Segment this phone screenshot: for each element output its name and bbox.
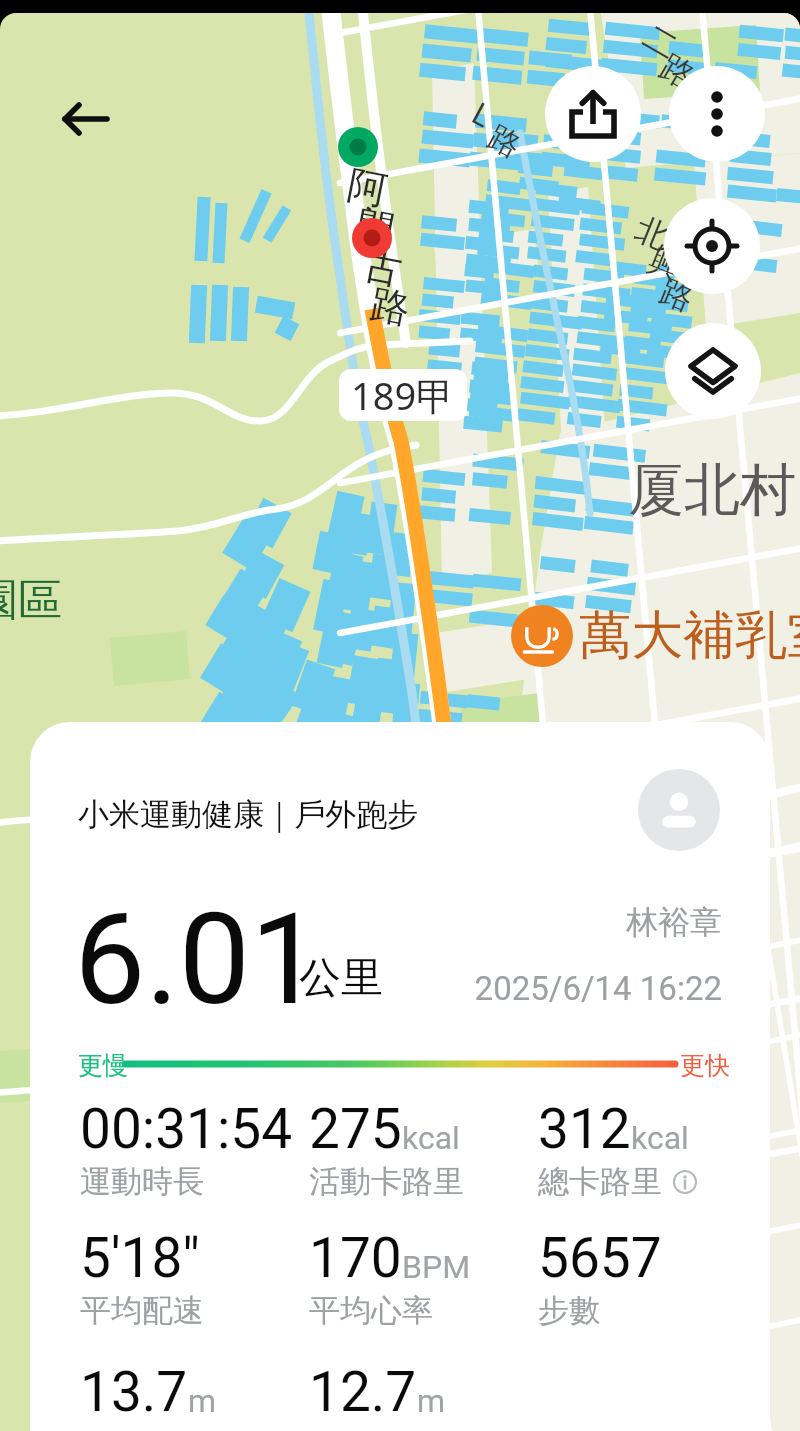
button[interactable]: 13.7 [80, 1360, 217, 1424]
button[interactable]: 5657 [538, 1226, 662, 1330]
staticText: 更快 [680, 1050, 730, 1081]
button[interactable]: 萬大補乳室 [511, 603, 800, 669]
button[interactable]: 00:31:54 [80, 1097, 293, 1201]
staticText: L [465, 91, 500, 137]
button[interactable]: 5'18" [80, 1226, 204, 1330]
button[interactable]: Map layers [665, 323, 761, 419]
staticText: 更慢 [78, 1050, 128, 1081]
button[interactable]: 189甲 [339, 369, 467, 421]
button[interactable]: 275 [309, 1097, 464, 1201]
button[interactable]: 170 [309, 1226, 471, 1330]
staticText: m [417, 1382, 446, 1420]
button[interactable]: 小米運動健康｜戶外跑步 [78, 795, 419, 834]
button[interactable]: 12.7 [309, 1360, 446, 1424]
staticText: 6.01 [74, 885, 322, 1034]
staticText: 5'18" [80, 1226, 200, 1290]
staticText: kcal [631, 1119, 689, 1157]
staticText: 平均心率 [309, 1291, 433, 1330]
staticText: 古 [359, 240, 406, 295]
button[interactable]: 312 [538, 1097, 697, 1201]
staticText: 5657 [538, 1226, 662, 1290]
staticText: 312 [538, 1097, 631, 1161]
staticText: 運動時長 [80, 1162, 204, 1201]
staticText: BPM [402, 1248, 471, 1286]
staticText: 塱 [352, 200, 399, 255]
staticText: 公里 [299, 952, 383, 1005]
button[interactable]: Back [52, 85, 120, 153]
staticText: 萬大補乳室 [579, 603, 800, 669]
button[interactable]: More options [669, 66, 765, 162]
staticText: 活動卡路里 [309, 1162, 464, 1201]
staticText: 小米運動健康｜戶外跑步 [78, 795, 419, 834]
staticText: 林裕章 [626, 902, 722, 942]
button[interactable]: My location [664, 198, 760, 294]
staticText: 路 [482, 117, 527, 166]
button[interactable]: Share [545, 66, 641, 162]
staticText: 阿 [344, 160, 391, 215]
staticText: kcal [402, 1119, 460, 1157]
staticText: 路 [655, 270, 699, 320]
staticText: 步數 [538, 1291, 600, 1330]
staticText: 189甲 [351, 369, 455, 421]
staticText: 厦北村 [628, 455, 796, 526]
staticText: 00:31:54 [80, 1097, 293, 1161]
button[interactable]: Profile [638, 769, 720, 851]
staticText: 路 [653, 46, 702, 98]
staticText: 園區 [0, 573, 62, 628]
staticText: 275 [309, 1097, 402, 1161]
staticText: m [188, 1382, 217, 1420]
staticText: 12.7 [309, 1360, 417, 1424]
staticText: 2025/6/14 16:22 [474, 969, 722, 1008]
staticText: 總卡路里 [538, 1162, 662, 1201]
staticText: 二 [636, 16, 685, 68]
staticText: 13.7 [80, 1360, 188, 1424]
staticText: 北 [630, 208, 674, 258]
staticText: 路 [367, 279, 414, 334]
staticText: 平均配速 [80, 1291, 204, 1330]
staticText: 興 [643, 239, 687, 289]
staticText: 170 [309, 1226, 402, 1290]
